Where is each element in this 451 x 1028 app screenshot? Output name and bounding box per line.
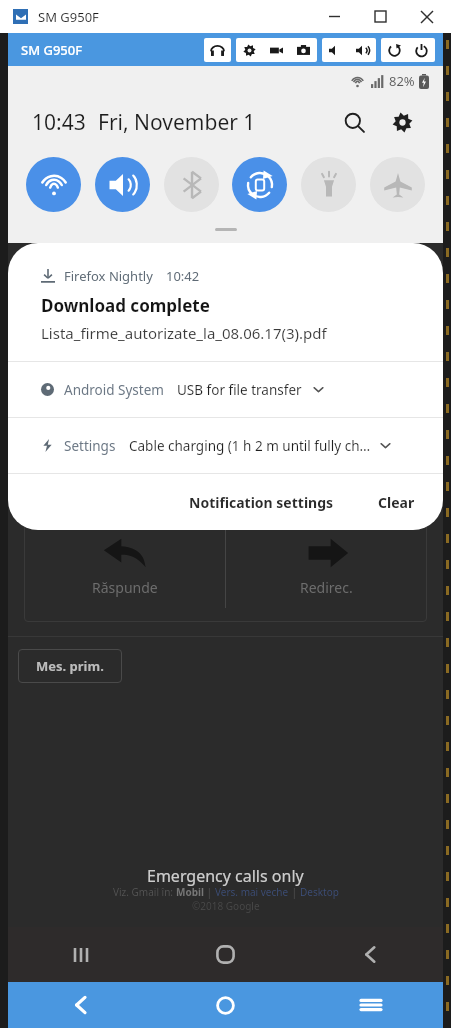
button[interactable]: Clear bbox=[366, 483, 427, 522]
staticText: USB for file transfer bbox=[177, 381, 302, 399]
button[interactable]: Recents bbox=[8, 927, 153, 982]
staticText: Clear bbox=[378, 493, 415, 512]
button[interactable]: rotate bbox=[381, 38, 408, 62]
staticText: Lista_firme_autorizate_la_08.06.17(3).pd… bbox=[41, 323, 327, 343]
button[interactable]: Răspunde bbox=[24, 510, 225, 622]
button[interactable]: gear bbox=[236, 38, 263, 62]
staticText: 82% bbox=[389, 72, 415, 90]
button[interactable]: video bbox=[263, 38, 290, 62]
button[interactable]: Home bbox=[153, 982, 298, 1028]
button[interactable]: Back bbox=[298, 927, 443, 982]
button[interactable]: Close bbox=[403, 0, 451, 33]
button[interactable]: Home bbox=[153, 927, 298, 982]
staticText: Fri, November 1 bbox=[98, 108, 256, 137]
button[interactable]: Minimize bbox=[311, 0, 357, 33]
staticText: Settings bbox=[64, 437, 116, 455]
button[interactable]: Mes. prim. bbox=[18, 649, 122, 683]
staticText: Mobil bbox=[176, 885, 204, 899]
staticText: ©2018 Google bbox=[192, 899, 260, 913]
staticText: Lista_firme_autorizate_la… bbox=[76, 433, 250, 452]
button[interactable]: Sound bbox=[95, 157, 150, 212]
button[interactable]: Auto rotate bbox=[232, 157, 287, 212]
button[interactable]: volup bbox=[349, 38, 376, 62]
staticText: Răspunde bbox=[92, 578, 158, 597]
staticText: Notification settings bbox=[189, 493, 334, 512]
staticText: Mes. prim. bbox=[36, 657, 104, 675]
button[interactable]: Redirec. bbox=[226, 510, 427, 622]
button[interactable]: Notification settings bbox=[177, 483, 346, 522]
button[interactable]: headset bbox=[204, 38, 231, 62]
button[interactable]: Settings bbox=[8, 418, 443, 473]
staticText: · bbox=[260, 433, 264, 451]
staticText: | bbox=[204, 885, 215, 899]
staticText: Download complete bbox=[41, 294, 210, 317]
button[interactable]: Airplane mode bbox=[370, 157, 425, 212]
button[interactable]: Wi-Fi bbox=[26, 157, 81, 212]
button[interactable]: Flashlight bbox=[301, 157, 356, 212]
button[interactable]: Settings bbox=[385, 105, 419, 139]
staticText: Firefox Nightly bbox=[64, 267, 153, 285]
button[interactable]: power bbox=[408, 38, 435, 62]
staticText: | bbox=[289, 885, 300, 899]
staticText: Vers. mai veche bbox=[215, 885, 289, 899]
staticText: SM G950F bbox=[38, 8, 99, 26]
staticText: PDF bbox=[33, 435, 54, 450]
staticText: 10:43 bbox=[32, 108, 86, 137]
button[interactable]: Bluetooth bbox=[164, 157, 219, 212]
button[interactable]: Back bbox=[8, 982, 153, 1028]
staticText: SM G950F bbox=[21, 41, 83, 59]
button[interactable]: Menu bbox=[298, 982, 443, 1028]
staticText: Printează bbox=[274, 432, 341, 452]
button[interactable]: camera bbox=[290, 38, 317, 62]
staticText: 10:42 bbox=[166, 267, 200, 285]
button[interactable]: Maximize bbox=[357, 0, 403, 33]
staticText: Cable charging (1 h 2 m until fully ch… bbox=[129, 437, 371, 455]
staticText: Redirec. bbox=[300, 578, 353, 597]
button[interactable]: Android System bbox=[8, 362, 443, 417]
staticText: Viz. Gmail în: bbox=[113, 885, 176, 899]
button[interactable]: Firefox Nightly bbox=[8, 243, 443, 361]
button[interactable]: Search bbox=[337, 105, 371, 139]
staticText: Desktop bbox=[300, 885, 339, 899]
staticText: Android System bbox=[64, 381, 164, 399]
staticText: Emergency calls only bbox=[147, 865, 304, 887]
button[interactable]: voldown bbox=[322, 38, 349, 62]
